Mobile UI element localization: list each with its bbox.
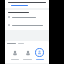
button[interactable] [8,23,46,27]
button[interactable]: Share via second app [22,47,33,61]
button[interactable] [5,0,49,8]
button[interactable]: Uploading share target [34,47,45,61]
button[interactable] [8,15,46,19]
button[interactable]: Share via first app [9,47,20,61]
